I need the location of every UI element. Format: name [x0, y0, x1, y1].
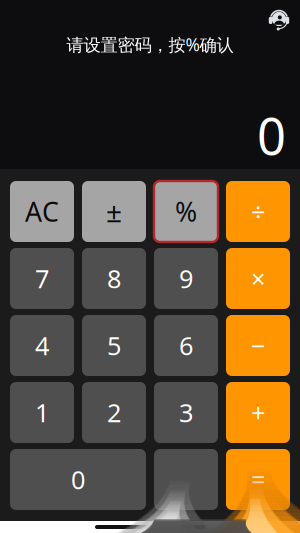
button[interactable] — [154, 449, 218, 510]
staticText: 9 — [179, 262, 193, 295]
staticText: = — [251, 463, 265, 496]
staticText: 4 — [35, 329, 49, 362]
button[interactable]: ± — [82, 181, 146, 242]
staticText: × — [251, 262, 265, 295]
staticText: % — [175, 194, 197, 229]
button[interactable]: 2 — [82, 382, 146, 443]
staticText: + — [251, 396, 265, 429]
staticText: − — [251, 329, 265, 362]
button[interactable]: 6 — [154, 315, 218, 376]
staticText: 8 — [107, 262, 121, 295]
button[interactable]: = — [226, 449, 290, 510]
staticText: 6 — [179, 329, 193, 362]
staticText: 3 — [179, 396, 193, 429]
staticText: ÷ — [251, 195, 265, 228]
button[interactable]: 5 — [82, 315, 146, 376]
staticText: AC — [25, 194, 59, 229]
staticText: ± — [106, 193, 122, 230]
button[interactable]: 0 — [10, 449, 146, 510]
button[interactable]: 9 — [154, 248, 218, 309]
staticText: 请设置密码，按%确认 — [66, 33, 233, 56]
button[interactable]: 8 — [82, 248, 146, 309]
staticText: 0 — [257, 102, 286, 169]
staticText: 2 — [107, 396, 121, 429]
button[interactable]: AC — [10, 181, 74, 242]
button[interactable]: − — [226, 315, 290, 376]
staticText: 0 — [71, 463, 85, 496]
button[interactable]: 3 — [154, 382, 218, 443]
staticText: 5 — [107, 329, 121, 362]
button[interactable]: 1 — [10, 382, 74, 443]
staticText: 1 — [35, 396, 49, 429]
button[interactable]: + — [226, 382, 290, 443]
staticText: 7 — [35, 262, 49, 295]
button[interactable]: % — [154, 181, 218, 242]
button[interactable]: Customer support — [265, 5, 293, 33]
button[interactable]: 4 — [10, 315, 74, 376]
button[interactable]: ÷ — [226, 181, 290, 242]
button[interactable]: × — [226, 248, 290, 309]
button[interactable]: 7 — [10, 248, 74, 309]
